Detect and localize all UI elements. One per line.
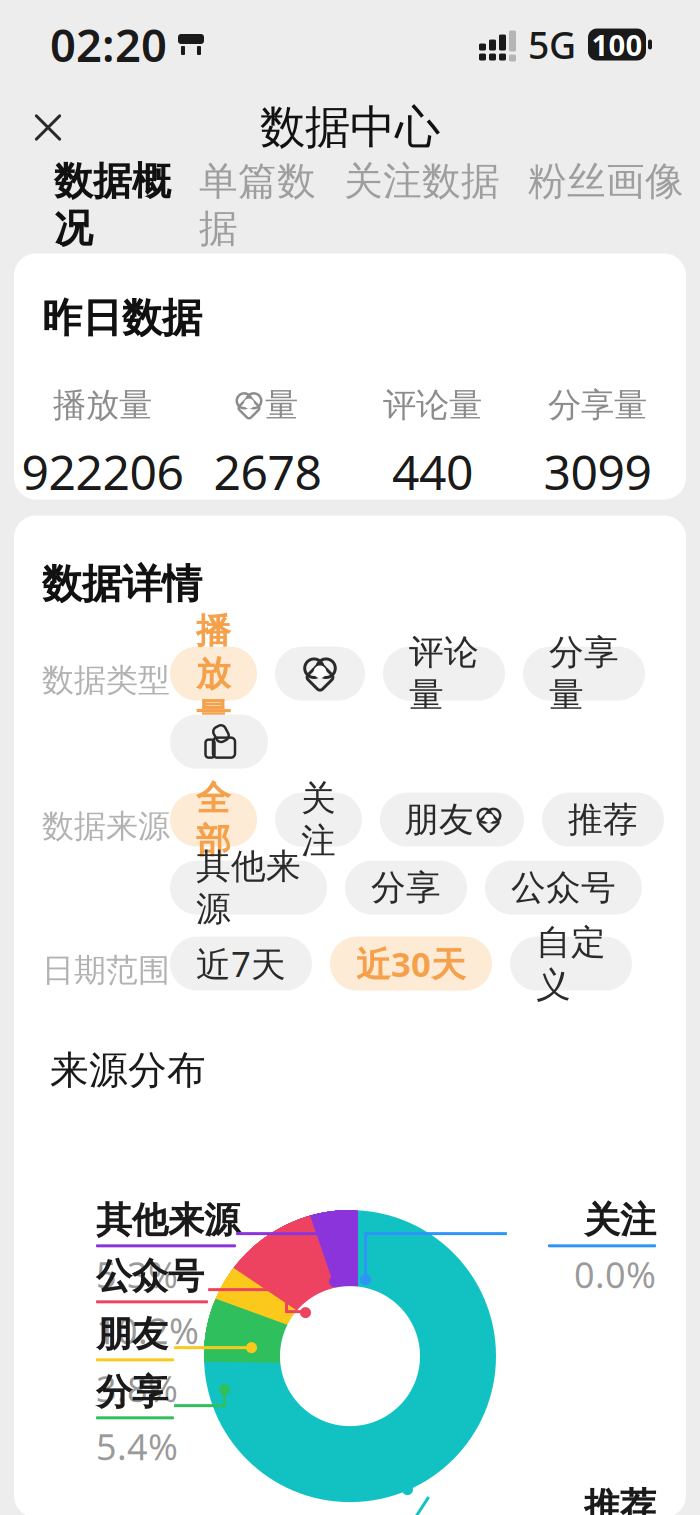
staticText: 2678 (213, 440, 321, 503)
button[interactable]: 评论量 (383, 647, 505, 701)
staticText: 量 (265, 385, 298, 425)
staticText: 朋友 (96, 1312, 168, 1356)
staticText: 0.0% (574, 1250, 656, 1298)
staticText: 近30天 (356, 941, 466, 987)
staticText: 分享量 (549, 631, 619, 716)
staticText: 其他来源 (96, 1198, 240, 1242)
staticText: 5.4% (96, 1422, 178, 1470)
staticText: 日期范围 (42, 951, 170, 990)
staticText: 评论量 (409, 631, 479, 716)
staticText: 全部 (196, 777, 231, 862)
staticText: 公众号 (511, 866, 616, 909)
staticText: 粉丝画像 (528, 157, 684, 205)
staticText: 数据详情 (42, 559, 202, 609)
staticText: 数据来源 (42, 807, 170, 846)
staticText: 公众号 (96, 1254, 204, 1298)
button[interactable]: 自定义 (510, 937, 632, 991)
button[interactable]: 近7天 (170, 937, 312, 991)
button[interactable]: 单篇数据 (185, 157, 330, 267)
staticText: 来源分布 (50, 1047, 206, 1094)
staticText: 自定义 (536, 921, 606, 1006)
staticText: 朋友 (404, 798, 474, 841)
button[interactable]: 朋友 (380, 793, 524, 847)
button[interactable]: 近30天 (330, 937, 492, 991)
staticText: 100 (591, 25, 642, 64)
button[interactable]: 公众号 (485, 861, 642, 915)
staticText: 3.8% (96, 1364, 178, 1412)
button[interactable]: 推荐量 (170, 715, 268, 769)
button[interactable]: 推荐 (542, 793, 664, 847)
staticText: 5G (528, 20, 576, 69)
staticText: 922206 (21, 440, 183, 503)
staticText: 分享 (96, 1370, 168, 1414)
staticText: 数据中心 (260, 100, 440, 155)
staticText: 02:20 (50, 14, 167, 75)
staticText: 播放量 (53, 385, 152, 425)
staticText: 关注 (584, 1198, 656, 1242)
staticText: 关注 (301, 777, 336, 862)
button[interactable]: 粉丝画像 (514, 157, 698, 220)
button[interactable]: 点赞量 (275, 647, 365, 701)
button[interactable]: 数据概况 (40, 157, 185, 267)
staticText: 10.2% (96, 1306, 199, 1354)
staticText: 推荐 (568, 798, 638, 841)
button[interactable]: 全部 (170, 793, 257, 847)
staticText: 3099 (543, 440, 651, 503)
staticText: 关注数据 (344, 157, 500, 205)
staticText: 播放量 (196, 610, 231, 737)
staticText: 推荐 (584, 1484, 656, 1515)
button[interactable]: Close (18, 97, 78, 157)
staticText: 数据概况 (54, 157, 171, 252)
staticText: 评论量 (383, 385, 482, 425)
button[interactable]: 播放量 (170, 647, 257, 701)
staticText: 440 (392, 440, 473, 503)
button[interactable]: 关注 (275, 793, 362, 847)
button[interactable]: 分享量 (523, 647, 645, 701)
staticText: 数据类型 (42, 661, 170, 700)
staticText: 昨日数据 (42, 293, 202, 343)
staticText: 其他来源 (196, 845, 301, 930)
staticText: 单篇数据 (199, 157, 316, 252)
button[interactable]: 关注数据 (330, 157, 514, 220)
staticText: 5.3% (96, 1250, 178, 1298)
staticText: 分享 (371, 866, 441, 909)
staticText: 近7天 (196, 941, 286, 987)
button[interactable]: 其他来源 (170, 861, 327, 915)
button[interactable]: 分享 (345, 861, 467, 915)
staticText: 分享量 (548, 385, 647, 425)
